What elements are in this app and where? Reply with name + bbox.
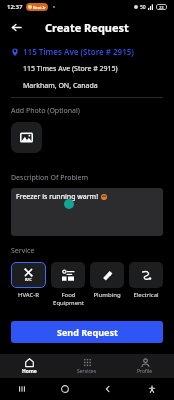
staticText: Create Request [45, 20, 129, 35]
staticText: Plumbing [93, 291, 121, 299]
staticText: 115 Times Ave (Store # 2915) [23, 46, 134, 57]
staticText: Beat.Ir [33, 5, 46, 10]
staticText: Description Of Problem [11, 173, 89, 183]
staticText: Electrical [133, 291, 159, 299]
button[interactable]: Home [0, 354, 58, 378]
button[interactable]: Electrical [129, 262, 163, 299]
staticText: Services [77, 368, 97, 375]
staticText: 115 Times Ave (Store # 2915) [23, 64, 118, 74]
staticText: Markham, ON, Canada [23, 81, 98, 91]
staticText: 23 [159, 5, 164, 10]
button[interactable]: R/C [11, 262, 46, 299]
staticText: Food Equipment [53, 291, 84, 307]
button[interactable]: Send Request [11, 321, 163, 343]
staticText: Home [22, 368, 37, 375]
button[interactable]: Food Equipment [51, 262, 85, 307]
staticText: R/C [25, 277, 32, 282]
staticText: Profile [137, 368, 153, 375]
button[interactable]: Back [6, 17, 26, 37]
staticText: Add Photo (Optional) [11, 106, 80, 116]
staticText: Service [11, 246, 35, 256]
staticText: 12:37 [7, 3, 23, 11]
staticText: HVAC-R [18, 291, 39, 299]
staticText: Send Request [57, 326, 118, 338]
button[interactable]: Services [58, 354, 116, 378]
staticText: 50 [140, 4, 146, 11]
staticText: Freezer is running warm! [16, 192, 99, 202]
button[interactable]: Add Photo [11, 122, 42, 153]
button[interactable]: 115 Times Ave (Store # 2915) [0, 46, 174, 91]
button[interactable]: Freezer is running warm! [11, 188, 163, 236]
button[interactable]: Profile [116, 354, 174, 378]
button[interactable]: Plumbing [90, 262, 124, 299]
